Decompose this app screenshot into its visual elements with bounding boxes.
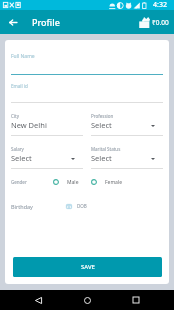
- button[interactable]: Back: [4, 10, 21, 34]
- staticText: Profession: [91, 113, 114, 119]
- staticText: Gender: [11, 179, 27, 185]
- staticText: Select: [11, 153, 32, 163]
- staticText: SAVE: [81, 263, 95, 271]
- button[interactable]: Female: [91, 177, 123, 187]
- button[interactable]: Back: [27, 290, 49, 310]
- staticText: New Delhi: [11, 120, 47, 130]
- staticText: Marital Status: [91, 146, 121, 152]
- button[interactable]: SAVE: [13, 257, 162, 277]
- staticText: Female: [105, 179, 123, 186]
- staticText: Male: [67, 179, 79, 186]
- button[interactable]: Cart: [139, 16, 174, 28]
- staticText: Profile: [32, 16, 60, 28]
- button[interactable]: DOB: [66, 201, 87, 211]
- button[interactable]: Home: [76, 290, 98, 310]
- staticText: Full Name: [11, 53, 35, 60]
- staticText: City: [11, 113, 19, 119]
- button[interactable]: Male: [53, 177, 79, 187]
- button[interactable]: [91, 111, 163, 137]
- button[interactable]: [11, 111, 83, 137]
- staticText: Birthday: [11, 203, 33, 210]
- button[interactable]: [11, 80, 163, 104]
- staticText: Email id: [11, 83, 28, 89]
- button[interactable]: [11, 50, 163, 76]
- button[interactable]: [91, 144, 163, 170]
- staticText: DOB: [77, 203, 87, 209]
- staticText: Select: [91, 120, 112, 130]
- button[interactable]: [11, 144, 83, 170]
- staticText: Salary: [11, 146, 24, 152]
- button[interactable]: Recent apps: [125, 290, 147, 310]
- staticText: ₹0.00: [152, 18, 169, 27]
- staticText: Select: [91, 153, 112, 163]
- staticText: 4:32: [153, 0, 167, 10]
